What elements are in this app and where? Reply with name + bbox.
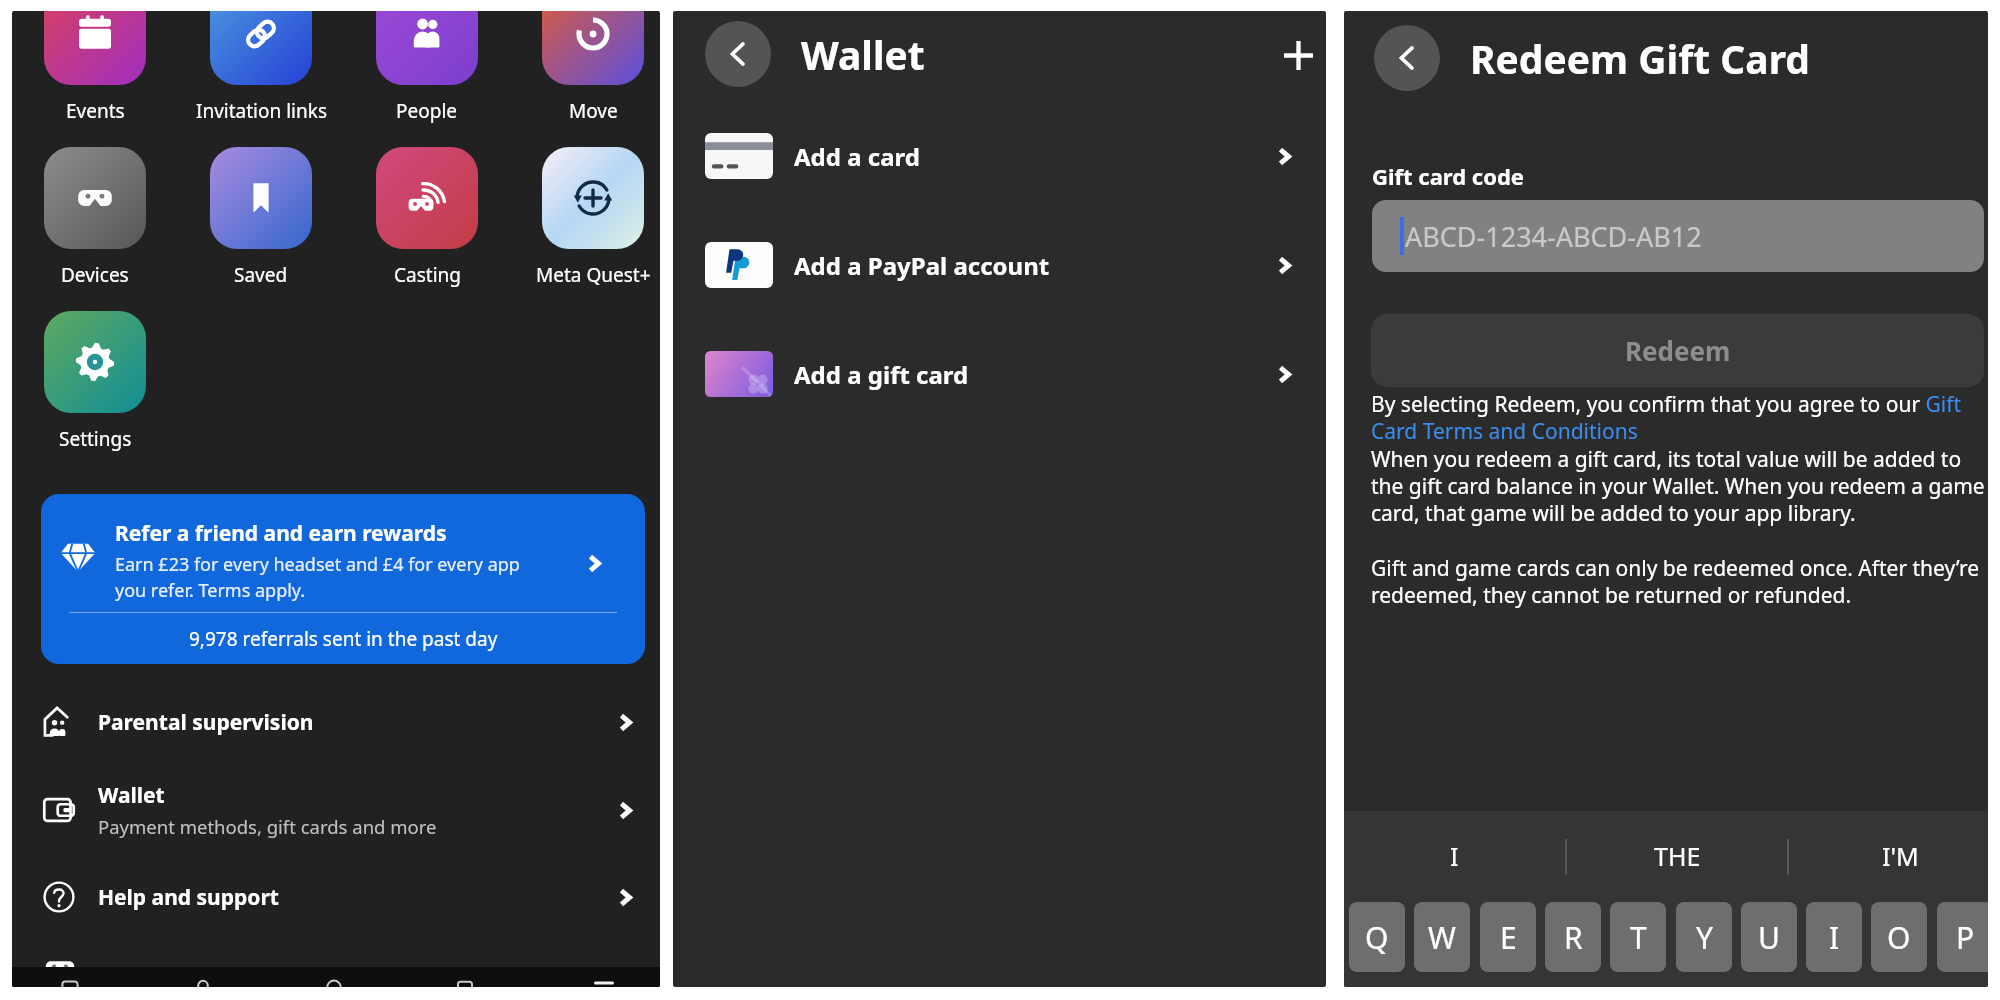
button[interactable]: Add a gift card [673,335,1326,413]
staticText: When you redeem a gift card, its total v… [1371,445,1985,527]
button[interactable]: E [1480,902,1536,972]
staticText: Redeem [1625,333,1731,368]
button[interactable]: Add a PayPal account [673,226,1326,304]
button[interactable]: Library [440,967,500,987]
button[interactable]: Y [1676,902,1732,972]
staticText: U [1758,917,1780,958]
button[interactable]: Settings [12,311,178,452]
button[interactable]: Back [705,21,771,87]
staticText: Earn £23 for every headset and £4 for ev… [115,552,551,603]
staticText: I [1450,839,1459,873]
staticText: Y [1696,917,1713,958]
button[interactable]: O [1871,902,1927,972]
button[interactable]: P [1937,902,1988,972]
button[interactable]: Explore [309,967,369,987]
staticText: Add a PayPal account [794,249,1050,282]
staticText: By selecting Redeem, you confirm that yo… [1371,390,1985,445]
staticText: Add a card [794,140,920,173]
button[interactable]: Add a card [673,117,1326,195]
button[interactable]: ABCD-1234-ABCD-AB12 [1372,200,1984,272]
staticText: Devices [61,262,129,288]
staticText: Payment methods, gift cards and more [98,814,437,839]
button[interactable]: Move [510,11,660,124]
staticText: R [1564,917,1583,958]
staticText: THE [1654,839,1701,873]
button[interactable]: Invitation links [178,11,344,124]
staticText: Invitation links [196,98,327,124]
button[interactable]: Home [45,967,105,987]
staticText: Events [66,98,125,124]
button[interactable]: W [1414,902,1470,972]
staticText: Add a gift card [794,358,969,391]
button[interactable]: People [344,11,510,124]
staticText: Saved [234,262,288,288]
staticText: Move [569,98,618,124]
staticText: Settings [59,426,132,452]
staticText: P [1956,917,1975,958]
staticText: E [1500,917,1517,958]
staticText: Wallet [98,781,165,810]
button[interactable]: Devices [43,951,77,985]
button[interactable]: Search [179,967,239,987]
staticText: Redeem Gift Card [1470,32,1811,85]
staticText: W [1428,917,1456,958]
button[interactable]: Saved [178,147,344,288]
staticText: Help and support [98,883,279,912]
button[interactable]: I'M [1840,811,1960,901]
button[interactable]: Devices [12,147,178,288]
staticText: Refer a friend and earn rewards [115,519,447,548]
button[interactable]: Menu [579,967,639,987]
staticText: Wallet [801,28,925,81]
staticText: ABCD-1234-ABCD-AB12 [1405,218,1702,255]
button[interactable]: Redeem [1371,314,1984,387]
button[interactable]: U [1741,902,1797,972]
button[interactable]: Q [1349,902,1405,972]
staticText: O [1887,917,1911,958]
staticText: Q [1365,917,1389,958]
staticText: Gift and game cards can only be redeemed… [1371,554,1985,609]
staticText: I'M [1882,839,1919,873]
staticText: People [396,98,458,124]
button[interactable]: Parental supervision [12,678,660,766]
button[interactable]: R [1545,902,1601,972]
button[interactable]: Back [1374,25,1440,91]
staticText: T [1630,917,1647,958]
button[interactable]: Meta Quest+ [510,147,660,288]
staticText: Parental supervision [98,708,314,737]
button[interactable]: Events [12,11,178,124]
button[interactable]: Add [1270,27,1326,84]
button[interactable]: Casting [344,147,510,288]
button[interactable]: Help and support [12,853,660,941]
staticText: Casting [394,262,461,288]
button[interactable]: Wallet [12,766,660,854]
staticText: I [1829,917,1840,958]
staticText: Meta Quest+ [536,262,651,288]
button[interactable]: I [1806,902,1862,972]
button[interactable]: T [1610,902,1666,972]
button[interactable]: I [1394,811,1514,901]
button[interactable]: Refer a friend and earn rewards [41,494,645,664]
button[interactable]: THE [1617,811,1737,901]
staticText: Gift card code [1372,161,1524,191]
staticText: 9,978 referrals sent in the past day [189,626,498,652]
